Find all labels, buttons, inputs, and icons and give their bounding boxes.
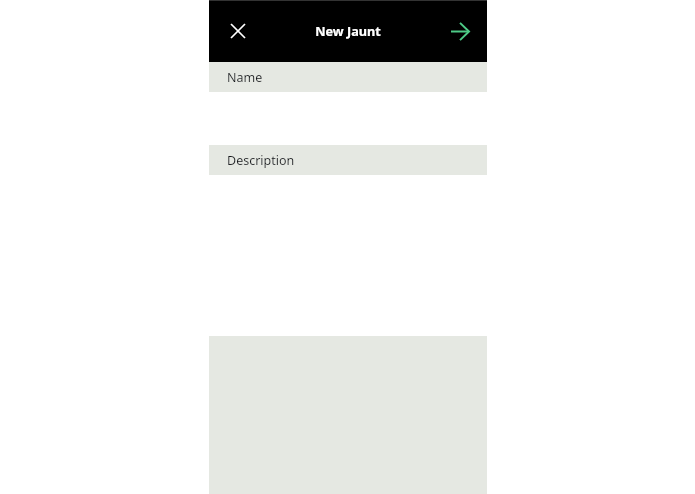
staticText: Description xyxy=(227,152,295,169)
button[interactable]: Close xyxy=(222,15,254,47)
staticText: Name xyxy=(227,69,263,86)
staticText: New Jaunt xyxy=(315,22,381,39)
button[interactable]: Save xyxy=(444,15,476,47)
